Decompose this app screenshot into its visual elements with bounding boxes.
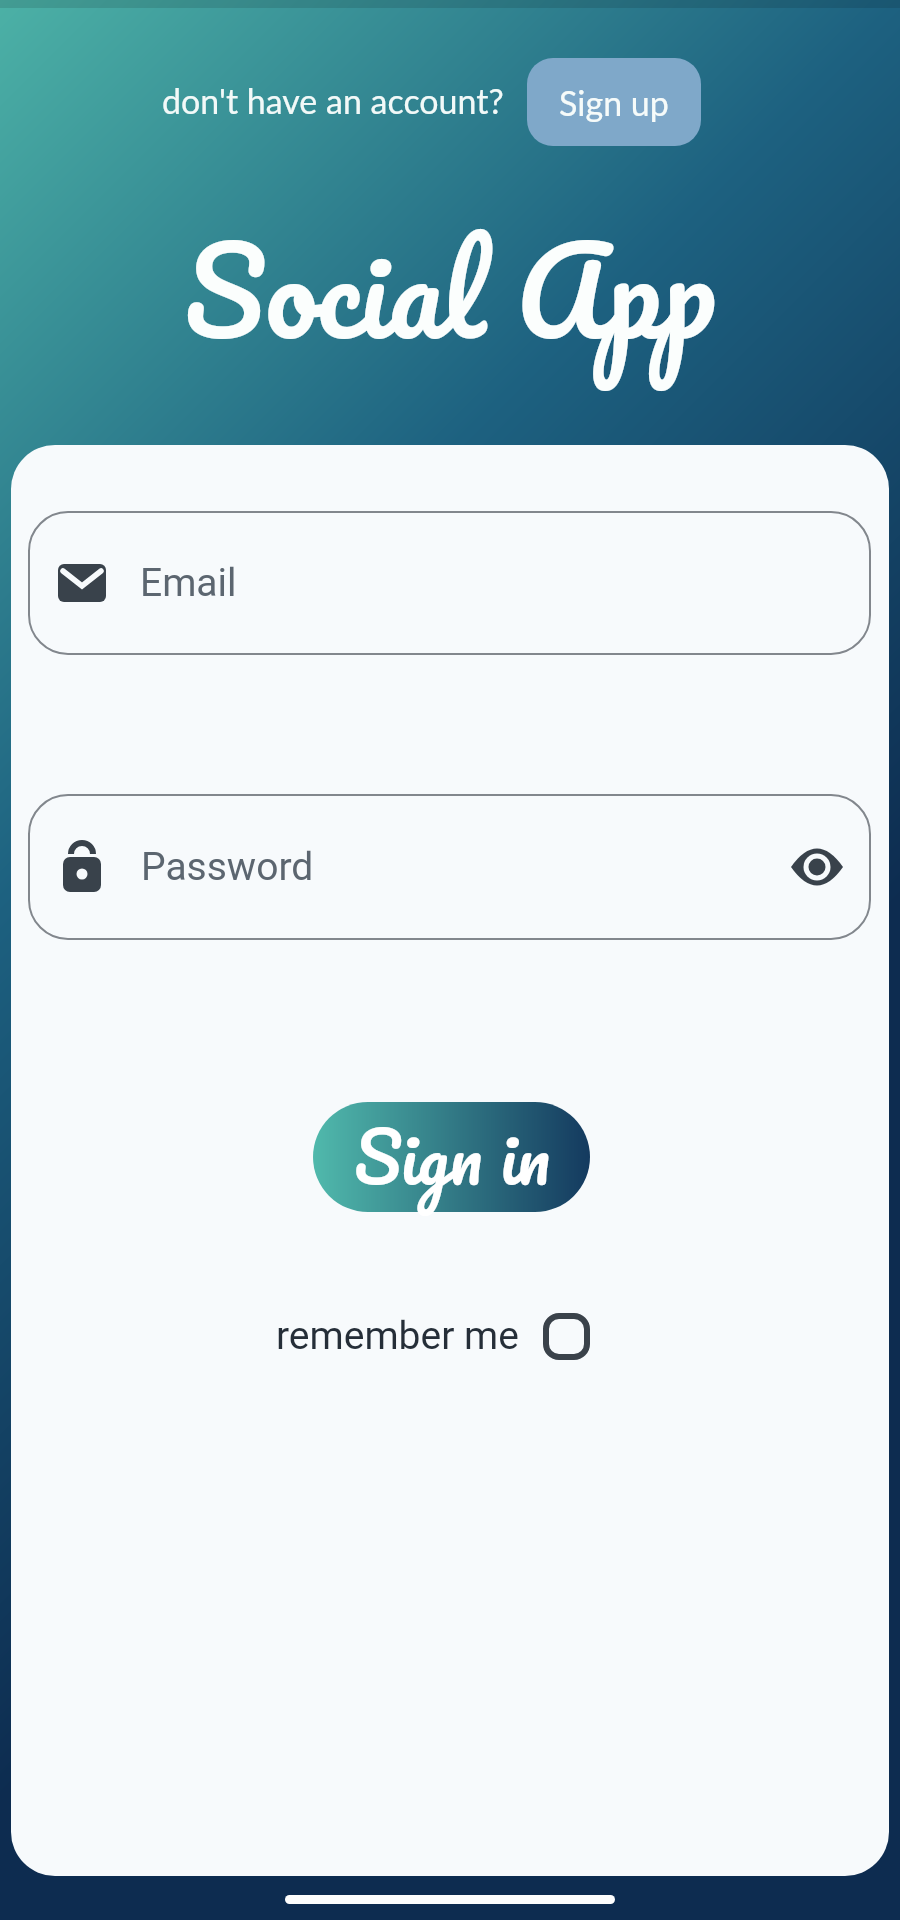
staticText: don't have an account? — [162, 80, 504, 121]
staticText: remember me — [276, 1313, 519, 1359]
button[interactable]: Sign up — [527, 58, 701, 146]
staticText: Social App — [184, 187, 716, 391]
staticText: Email — [140, 560, 237, 606]
button[interactable]: Password — [28, 794, 871, 940]
button[interactable]: Email — [28, 511, 871, 655]
button[interactable] — [543, 1313, 590, 1360]
button[interactable] — [313, 1102, 590, 1212]
staticText: Sign up — [559, 82, 669, 123]
staticText: Sign in — [354, 1096, 550, 1215]
staticText: Password — [141, 844, 314, 890]
